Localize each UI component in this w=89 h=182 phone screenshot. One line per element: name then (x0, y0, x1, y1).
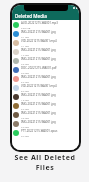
button[interactable]: VID-20221215-WA001.mp4 (12, 83, 79, 92)
staticText: 1.8 MB (21, 98, 29, 101)
staticText: 3.0 MB (21, 125, 29, 128)
button[interactable]: IMG-20221215-WA001.jpg (12, 29, 79, 38)
staticText: VID-20221215-WA001.mp4 (21, 39, 57, 43)
staticText: Deleted Media (15, 13, 47, 19)
staticText: 5.2 MB (21, 80, 29, 83)
staticText: 0.9 MB (21, 71, 29, 74)
button[interactable]: IMG-20221215-WA001.jpg (12, 119, 79, 128)
staticText: 4.1 MB (21, 35, 29, 38)
staticText: DOC-20221215-WA001.pdf (21, 66, 57, 70)
staticText: IMG-20221215-WA001.jpg (21, 48, 56, 52)
staticText: IMG-20221215-WA001.jpg (21, 102, 56, 106)
staticText: 8.3 MB (21, 89, 29, 92)
staticText: 3.5 MB (21, 62, 29, 65)
button[interactable]: IMG-20221215-WA001.jpg (12, 47, 79, 56)
staticText: 2.2 MB (21, 107, 29, 110)
staticText: 1.2 MB (21, 53, 29, 56)
staticText: IMG-20221215-WA001.jpg (21, 111, 56, 115)
button[interactable]: IMG-20221215-WA001.jpg (12, 74, 79, 83)
staticText: IMG-20221215-WA001.jpg (21, 30, 56, 34)
staticText: IMG-20221215-WA001.jpg (21, 93, 56, 97)
button[interactable]: PTT-20221215-WA001.opus (12, 128, 79, 137)
staticText: 0.4 MB (21, 134, 29, 137)
button[interactable]: IMG-20221215-WA001.jpg (12, 92, 79, 101)
staticText: 4.6 MB (21, 116, 29, 119)
staticText: See All Deleted Files (14, 153, 76, 172)
staticText: IMG-20221215-WA001.jpg (21, 75, 56, 79)
staticText: 2.60 MB (21, 26, 31, 29)
button[interactable]: IMG-20221215-WA001.jpg (12, 101, 79, 110)
staticText: PTT-20221215-WA001.opus (21, 129, 58, 133)
staticText: AUD-20221215-WA001.mp3 (21, 21, 58, 25)
staticText: VID-20221215-WA001.mp4 (21, 84, 57, 88)
staticText: 7.1 MB (21, 44, 29, 47)
button[interactable]: IMG-20221215-WA001.jpg (12, 56, 79, 65)
button[interactable]: AUD-20221215-WA001.mp3 (12, 20, 79, 29)
staticText: IMG-20221215-WA001.jpg (21, 57, 56, 61)
button[interactable]: VID-20221215-WA001.mp4 (12, 38, 79, 47)
button[interactable]: IMG-20221215-WA001.jpg (12, 110, 79, 119)
button[interactable]: DOC-20221215-WA001.pdf (12, 65, 79, 74)
staticText: IMG-20221215-WA001.jpg (21, 120, 56, 124)
